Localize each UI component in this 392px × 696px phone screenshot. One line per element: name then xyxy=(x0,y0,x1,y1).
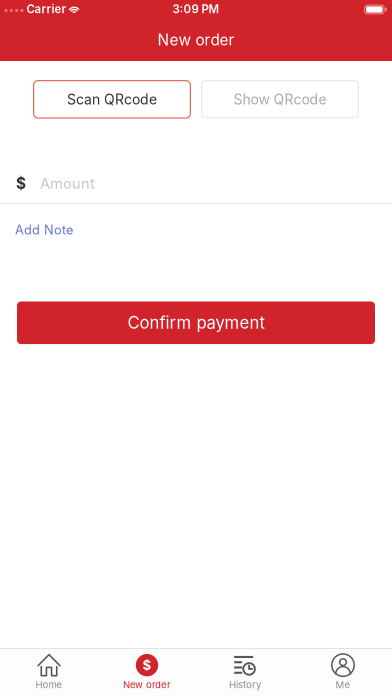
button[interactable]: History xyxy=(196,649,294,696)
staticText: Scan QRcode xyxy=(67,91,157,108)
staticText: Carrier xyxy=(26,2,66,16)
button[interactable]: Me xyxy=(294,649,392,696)
button[interactable]: Show QRcode xyxy=(201,80,359,119)
button[interactable]: Scan QRcode xyxy=(33,80,191,119)
button[interactable]: Home xyxy=(0,649,98,696)
staticText: New order xyxy=(157,31,234,49)
staticText: Confirm payment xyxy=(127,313,264,333)
staticText: New order xyxy=(123,679,171,690)
staticText: Add Note xyxy=(15,222,73,237)
staticText: $ xyxy=(142,657,151,673)
button[interactable]: Confirm payment xyxy=(17,301,375,344)
staticText: Show QRcode xyxy=(233,91,326,108)
staticText: $ xyxy=(16,174,26,193)
staticText: Home xyxy=(35,679,62,690)
staticText: Amount xyxy=(40,175,95,192)
button[interactable]: Add Note xyxy=(15,218,73,241)
staticText: 3:09 PM xyxy=(172,2,219,16)
button[interactable]: $ xyxy=(98,649,196,696)
staticText: History xyxy=(229,679,261,690)
staticText: Me xyxy=(335,679,350,690)
